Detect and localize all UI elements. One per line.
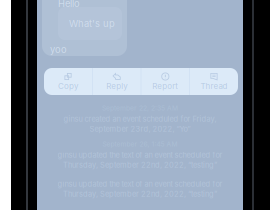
staticText: ginsu updated the text of an event sched…: [57, 150, 222, 159]
staticText: Reply: [106, 81, 127, 91]
staticText: Thursday, September 22nd, 2022, “testing…: [63, 189, 217, 198]
staticText: ginsu created an event scheduled for Fri…: [63, 114, 216, 123]
button[interactable]: Report: [141, 68, 189, 95]
staticText: yoo: [50, 44, 67, 55]
staticText: Report: [152, 81, 178, 91]
staticText: What's up: [69, 18, 115, 29]
button[interactable]: Thread: [190, 68, 238, 95]
staticText: Thursday, September 22nd, 2022, “testing…: [63, 160, 217, 169]
staticText: September 23rd, 2022, “Yo”: [89, 124, 190, 133]
staticText: Copy: [58, 81, 78, 91]
staticText: Thread: [200, 81, 227, 91]
button[interactable]: Copy: [44, 68, 92, 95]
staticText: Hello: [58, 0, 80, 9]
staticText: ginsu updated the text of an event sched…: [57, 179, 222, 188]
button[interactable]: Reply: [93, 68, 141, 95]
